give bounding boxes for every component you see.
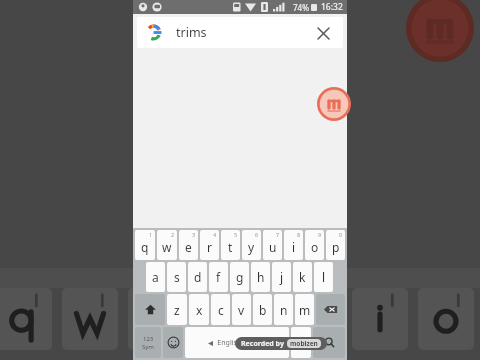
staticText: 0: [339, 231, 343, 238]
staticText: d: [194, 269, 202, 285]
staticText: trims: [176, 24, 207, 41]
button[interactable]: j: [272, 262, 291, 292]
staticText: m: [299, 302, 311, 318]
button[interactable]: 6: [242, 230, 261, 260]
button[interactable]: English (UK): [185, 327, 289, 358]
button[interactable]: 123: [135, 327, 161, 358]
staticText: f: [216, 269, 221, 285]
staticText: w: [162, 239, 172, 255]
button[interactable]: Emoji: [163, 327, 183, 358]
staticText: 8: [297, 231, 301, 238]
button[interactable]: v: [232, 294, 251, 325]
button[interactable]: Clear search: [312, 22, 334, 44]
button[interactable]: m: [295, 294, 314, 325]
button[interactable]: h: [251, 262, 270, 292]
button[interactable]: 0: [326, 230, 345, 260]
button[interactable]: Search: [313, 327, 345, 358]
staticText: h: [257, 269, 265, 285]
staticText: 5: [234, 231, 238, 238]
button[interactable]: z: [167, 294, 187, 325]
staticText: mobizen: [290, 339, 318, 348]
button[interactable]: trims: [137, 17, 343, 48]
staticText: e: [185, 239, 192, 255]
staticText: g: [236, 269, 244, 285]
button[interactable]: d: [188, 262, 207, 292]
staticText: y: [248, 239, 255, 255]
button[interactable]: 9: [305, 230, 324, 260]
staticText: z: [174, 302, 180, 318]
staticText: i: [292, 239, 296, 255]
button[interactable]: Shift: [135, 294, 165, 325]
staticText: English (UK): [217, 338, 257, 348]
button[interactable]: Period: [291, 327, 311, 358]
button[interactable]: a: [146, 262, 165, 292]
button[interactable]: b: [253, 294, 272, 325]
staticText: s: [174, 269, 180, 285]
staticText: 4: [213, 231, 217, 238]
staticText: 2: [171, 231, 175, 238]
button[interactable]: g: [230, 262, 249, 292]
staticText: q: [141, 239, 149, 255]
button[interactable]: Backspace: [316, 294, 345, 325]
button[interactable]: 1: [135, 230, 155, 260]
button[interactable]: f: [209, 262, 228, 292]
button[interactable]: 5: [221, 230, 240, 260]
staticText: l: [322, 269, 326, 285]
staticText: a: [152, 269, 159, 285]
button[interactable]: n: [274, 294, 293, 325]
staticText: o: [311, 239, 319, 255]
staticText: u: [269, 239, 277, 255]
button[interactable]: c: [211, 294, 230, 325]
staticText: Recorded by: [241, 339, 284, 349]
staticText: p: [332, 239, 340, 255]
staticText: v: [238, 302, 245, 318]
staticText: 16:32: [321, 1, 343, 13]
staticText: 9: [318, 231, 322, 238]
staticText: 74%: [293, 2, 309, 13]
button[interactable]: l: [314, 262, 333, 292]
staticText: r: [207, 239, 212, 255]
staticText: 6: [255, 231, 259, 238]
button[interactable]: 2: [157, 230, 177, 260]
staticText: c: [218, 302, 224, 318]
staticText: Sym: [142, 343, 154, 351]
staticText: 123: [143, 335, 154, 343]
button[interactable]: 3: [179, 230, 198, 260]
button[interactable]: s: [167, 262, 186, 292]
staticText: 3: [192, 231, 196, 238]
staticText: n: [280, 302, 288, 318]
button[interactable]: 7: [263, 230, 282, 260]
button[interactable]: x: [189, 294, 209, 325]
staticText: 7: [276, 231, 280, 238]
staticText: x: [196, 302, 203, 318]
button[interactable]: k: [293, 262, 312, 292]
button[interactable]: 4: [200, 230, 219, 260]
staticText: t: [228, 239, 233, 255]
staticText: j: [280, 269, 284, 285]
staticText: 1: [149, 231, 153, 238]
staticText: b: [259, 302, 267, 318]
button[interactable]: 8: [284, 230, 303, 260]
staticText: k: [299, 269, 306, 285]
